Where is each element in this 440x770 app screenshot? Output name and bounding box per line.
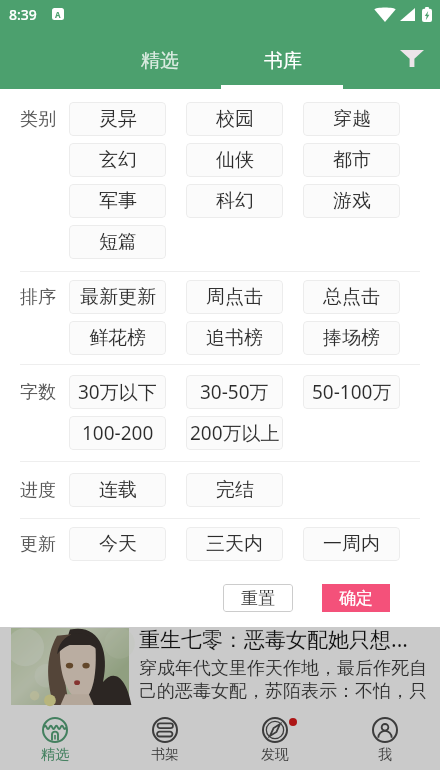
button[interactable]: 30-50万 xyxy=(186,375,283,409)
button[interactable]: 总点击 xyxy=(303,280,400,314)
button[interactable]: 玄幻 xyxy=(69,143,166,177)
button[interactable]: 校园 xyxy=(186,102,283,136)
button[interactable]: 三天内 xyxy=(186,527,283,561)
staticText: 精选 xyxy=(41,746,69,764)
staticText: 完结 xyxy=(216,478,254,502)
button[interactable]: 精选 xyxy=(98,28,221,89)
staticText: 30-50万 xyxy=(200,379,269,405)
staticText: 字数 xyxy=(20,381,56,404)
staticText: 追书榜 xyxy=(206,326,263,350)
button[interactable]: 都市 xyxy=(303,143,400,177)
button[interactable]: 我 xyxy=(330,710,440,770)
staticText: 穿越 xyxy=(333,107,371,131)
staticText: 科幻 xyxy=(216,189,254,213)
staticText: A xyxy=(55,9,61,20)
button[interactable]: 最新更新 xyxy=(69,280,166,314)
staticText: 都市 xyxy=(333,148,371,172)
button[interactable]: 100-200 xyxy=(69,416,166,450)
button[interactable]: 重置 xyxy=(223,584,293,612)
button[interactable]: 精选 xyxy=(0,710,110,770)
staticText: 今天 xyxy=(99,532,137,556)
button[interactable]: 游戏 xyxy=(303,184,400,218)
staticText: 总点击 xyxy=(323,285,380,309)
staticText: 类别 xyxy=(20,108,56,131)
staticText: 游戏 xyxy=(333,189,371,213)
staticText: 校园 xyxy=(216,107,254,131)
staticText: 周点击 xyxy=(206,285,263,309)
staticText: 重置 xyxy=(241,588,275,609)
staticText: 更新 xyxy=(20,533,56,556)
staticText: 短篇 xyxy=(99,230,137,254)
staticText: 仙侠 xyxy=(216,148,254,172)
staticText: 发现 xyxy=(261,746,289,764)
staticText: 50-100万 xyxy=(312,379,392,405)
button[interactable]: Filter xyxy=(384,28,440,89)
staticText: 军事 xyxy=(99,189,137,213)
button[interactable]: 书架 xyxy=(110,710,220,770)
button[interactable]: 完结 xyxy=(186,473,283,507)
staticText: 100-200 xyxy=(82,420,154,446)
staticText: 一周内 xyxy=(323,532,380,556)
staticText: 灵异 xyxy=(99,107,137,131)
staticText: 排序 xyxy=(20,286,56,309)
button[interactable]: 今天 xyxy=(69,527,166,561)
button[interactable]: 灵异 xyxy=(69,102,166,136)
button[interactable]: 周点击 xyxy=(186,280,283,314)
staticText: 最新更新 xyxy=(80,285,156,309)
button[interactable]: 捧场榜 xyxy=(303,321,400,355)
staticText: 穿成年代文里作天作地，最后作死自己的恶毒女配，苏陌表示：不怕，只 xyxy=(139,657,440,703)
button[interactable]: 仙侠 xyxy=(186,143,283,177)
button[interactable]: 追书榜 xyxy=(186,321,283,355)
button[interactable]: 军事 xyxy=(69,184,166,218)
button[interactable]: 确定 xyxy=(322,584,390,612)
staticText: 精选 xyxy=(141,49,179,73)
button[interactable]: 发现 xyxy=(220,710,330,770)
button[interactable]: 连载 xyxy=(69,473,166,507)
button[interactable]: 200万以上 xyxy=(186,416,283,450)
button[interactable]: 穿越 xyxy=(303,102,400,136)
staticText: 30万以下 xyxy=(78,379,157,405)
staticText: 我 xyxy=(378,746,392,764)
staticText: 书架 xyxy=(151,746,179,764)
button[interactable]: 重生七零：恶毒女配她只想... xyxy=(11,628,440,710)
button[interactable]: 鲜花榜 xyxy=(69,321,166,355)
staticText: 鲜花榜 xyxy=(89,326,146,350)
button[interactable]: 一周内 xyxy=(303,527,400,561)
staticText: 三天内 xyxy=(206,532,263,556)
staticText: 书库 xyxy=(264,49,302,73)
staticText: 重生七零：恶毒女配她只想... xyxy=(139,625,408,654)
staticText: 进度 xyxy=(20,479,56,502)
button[interactable]: 短篇 xyxy=(69,225,166,259)
staticText: 200万以上 xyxy=(190,420,280,446)
staticText: 连载 xyxy=(99,478,137,502)
button[interactable]: 30万以下 xyxy=(69,375,166,409)
button[interactable]: 50-100万 xyxy=(303,375,400,409)
staticText: 捧场榜 xyxy=(323,326,380,350)
button[interactable]: 书库 xyxy=(221,28,344,89)
staticText: 玄幻 xyxy=(99,148,137,172)
staticText: 8:39 xyxy=(9,5,37,24)
staticText: 确定 xyxy=(339,588,373,609)
button[interactable]: 科幻 xyxy=(186,184,283,218)
